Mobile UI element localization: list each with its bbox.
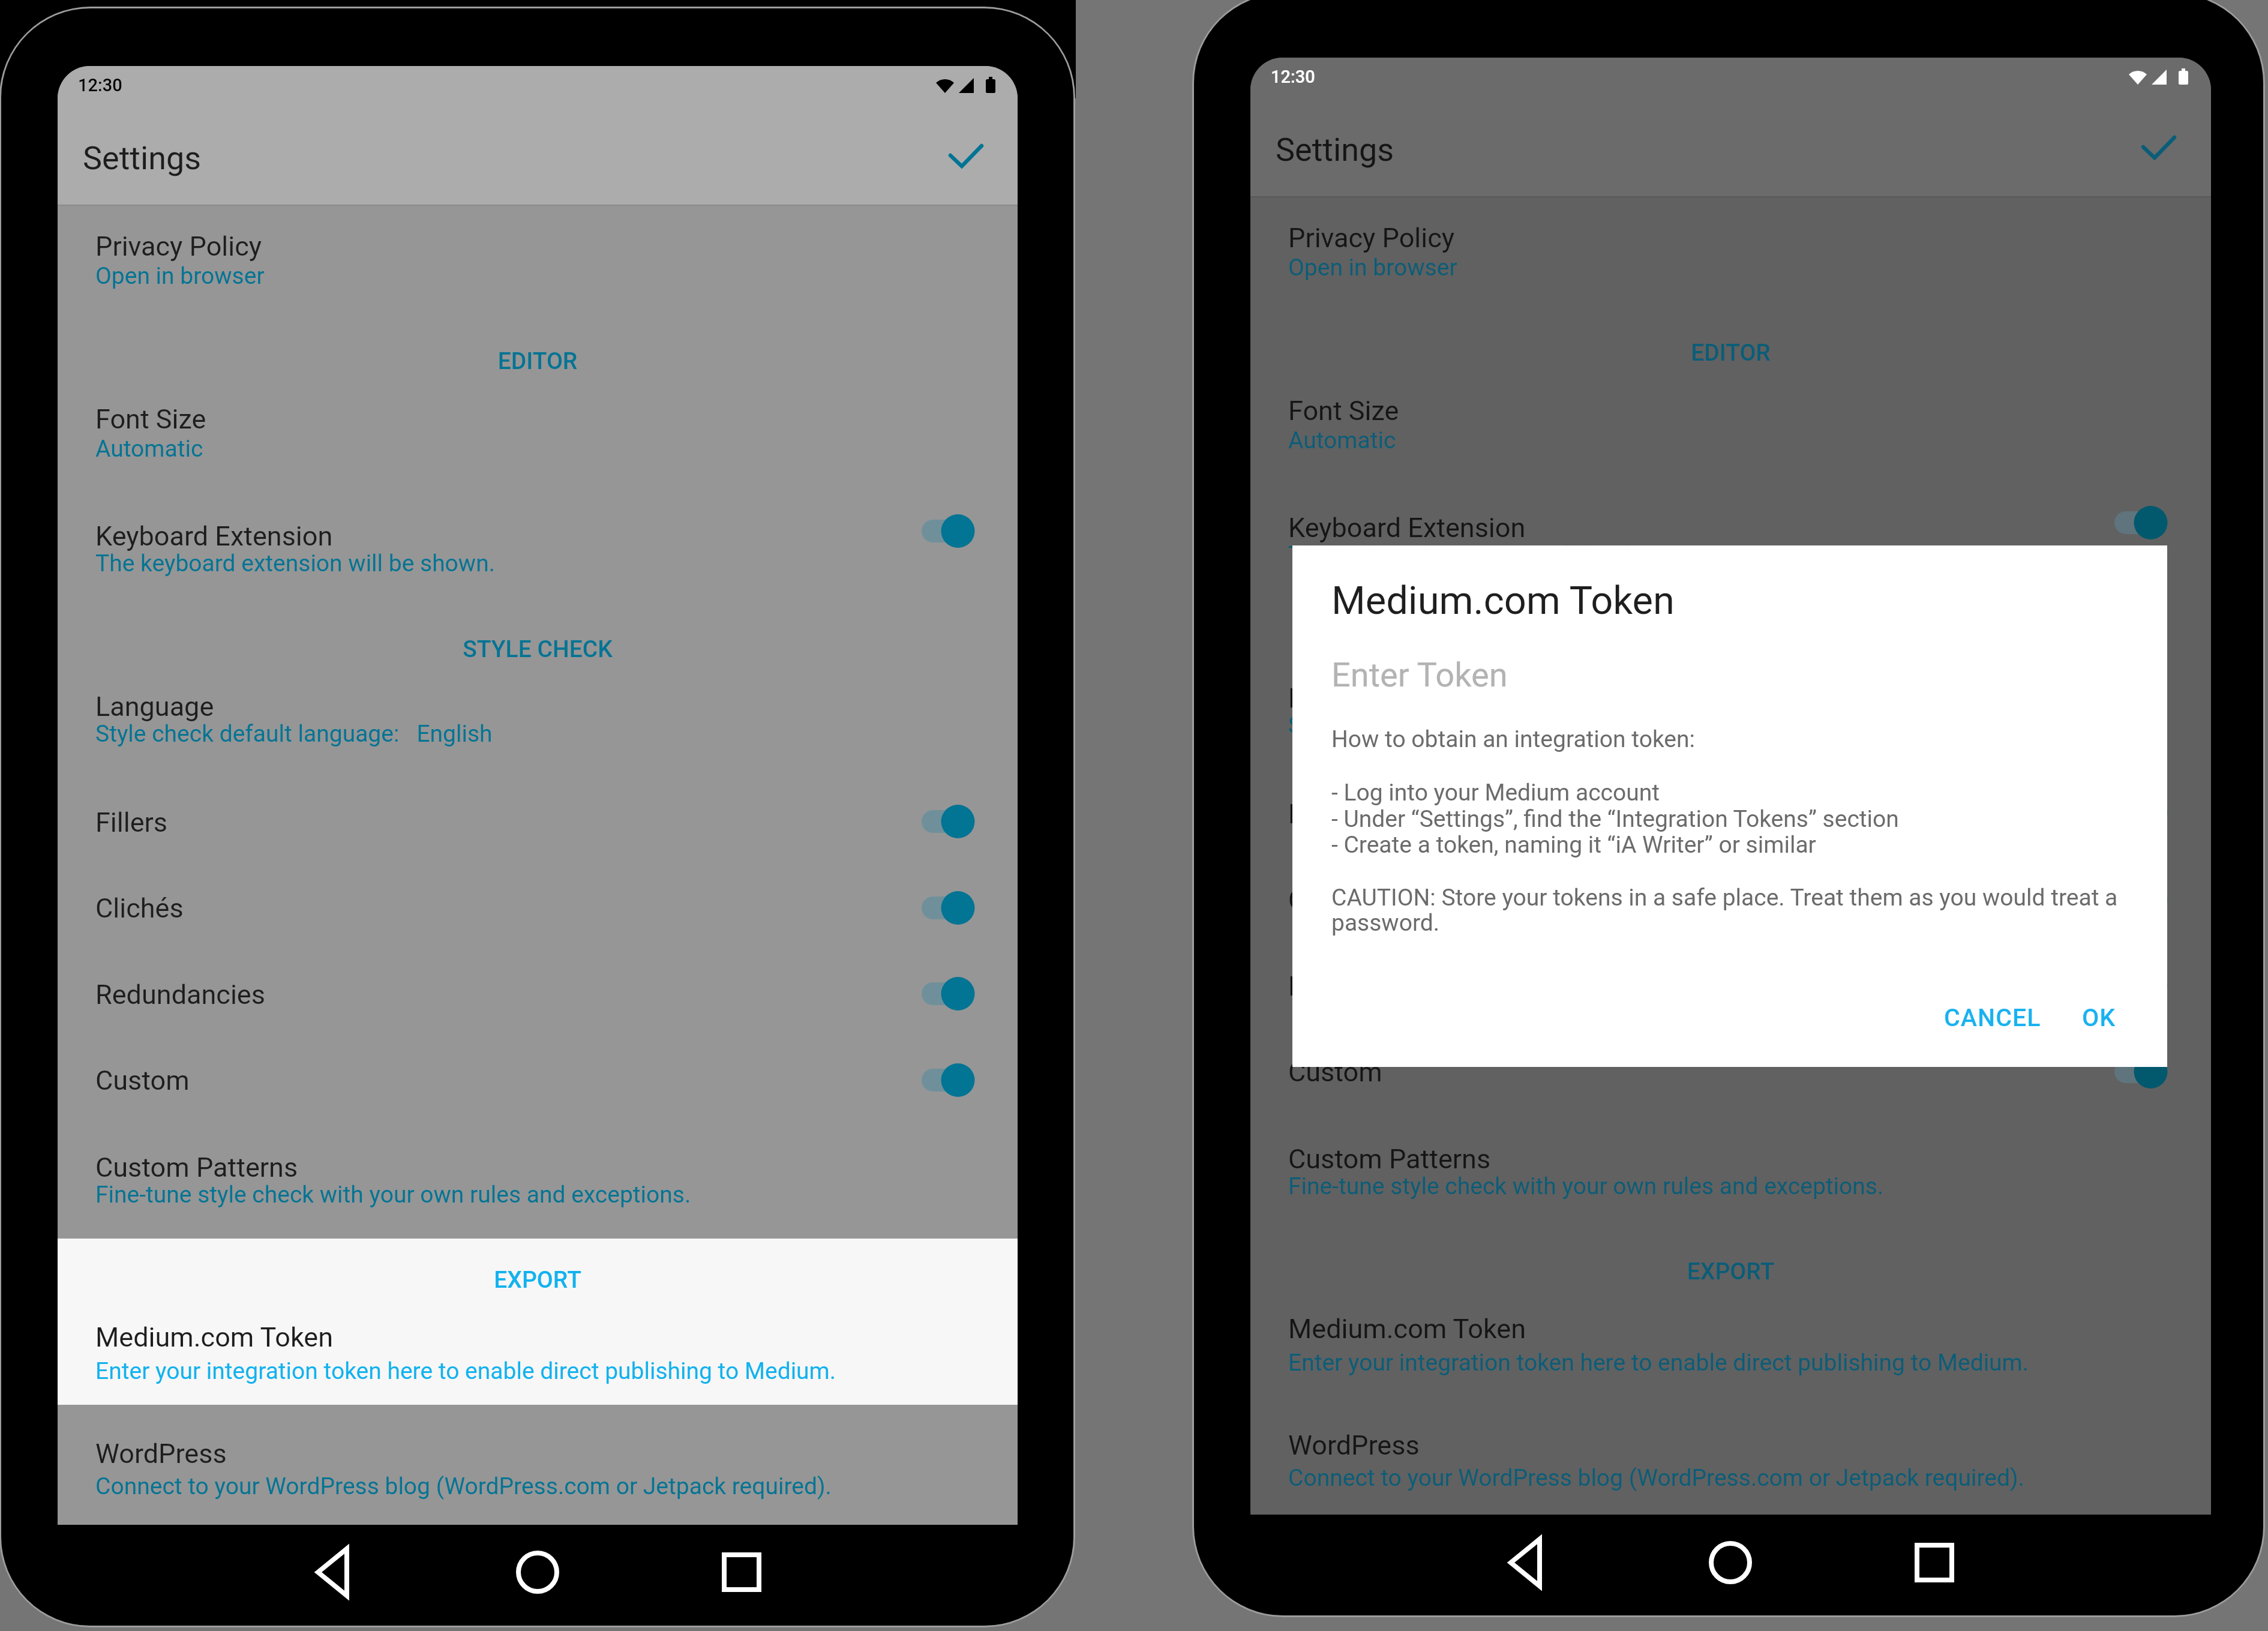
staticText: Language [1288, 682, 1407, 714]
staticText: Open in browser [95, 262, 265, 290]
staticText: Fine-tune style check with your own rule… [95, 1181, 691, 1209]
staticText: CAUTION: Store your tokens in a safe pla… [1331, 884, 2118, 912]
staticText: CANCEL [1944, 1003, 2041, 1032]
button[interactable] [58, 961, 1018, 1047]
button[interactable] [58, 393, 1018, 486]
button[interactable]: Toggle [2114, 793, 2184, 834]
staticText: Medium.com Token [1331, 578, 1675, 623]
button[interactable]: Toggle [922, 973, 991, 1014]
staticText: Font Size [95, 403, 206, 435]
button[interactable] [1250, 209, 2211, 304]
staticText: Connect to your WordPress blog (WordPres… [95, 1473, 832, 1500]
staticText: OK [2082, 1003, 2116, 1032]
staticText: Enter your integration token here to ena… [95, 1357, 836, 1385]
staticText: Custom [1288, 1056, 1382, 1088]
staticText: Font Size [1288, 395, 1399, 427]
button[interactable]: Toggle [2114, 1051, 2184, 1092]
button[interactable] [1250, 781, 2211, 867]
staticText: EDITOR [58, 347, 1018, 375]
staticText: The keyboard extension will be shown. [95, 550, 495, 577]
staticText: Clichés [1288, 884, 1376, 916]
button[interactable] [1250, 385, 2211, 478]
staticText: Custom Patterns [1288, 1143, 1491, 1175]
button[interactable] [58, 218, 1018, 312]
staticText: Enter Token [1331, 655, 1508, 695]
staticText: The keyboard extension will be shown. [1288, 541, 1688, 569]
staticText: Keyboard Extension [1288, 512, 1526, 544]
staticText: STYLE CHECK [58, 635, 1018, 663]
button[interactable]: Toggle [922, 511, 991, 551]
staticText: Automatic [95, 435, 203, 463]
staticText: Connect to your WordPress blog (WordPres… [1288, 1464, 2024, 1492]
staticText: WordPress [95, 1438, 227, 1470]
staticText: - Log into your Medium account [1331, 779, 1660, 806]
button[interactable] [1250, 1132, 2211, 1222]
button[interactable] [58, 1308, 1018, 1405]
staticText: 12:30 [78, 75, 122, 95]
button[interactable] [58, 789, 1018, 875]
button[interactable] [58, 875, 1018, 961]
staticText: - Create a token, naming it “iA Writer” … [1331, 831, 1816, 859]
other: Navigation bar [298, 1536, 778, 1608]
staticText: EDITOR [1250, 339, 2211, 367]
button[interactable] [1250, 952, 2211, 1039]
staticText: Clichés [95, 892, 184, 924]
staticText: Keyboard Extension [95, 520, 333, 552]
button[interactable] [58, 1428, 1018, 1523]
staticText: - Under “Settings”, find the “Integratio… [1331, 805, 1899, 833]
staticText: Settings [1276, 131, 1394, 169]
staticText: WordPress [1288, 1429, 1420, 1461]
staticText: EXPORT [1250, 1258, 2211, 1285]
staticText: Style check default language: English [1288, 712, 1685, 739]
button[interactable] [1250, 671, 2211, 763]
button[interactable] [1250, 502, 2211, 592]
button[interactable]: Toggle [2114, 879, 2184, 920]
button[interactable]: Cancel [1924, 985, 2021, 1014]
button[interactable] [1250, 1039, 2211, 1125]
staticText: password. [1331, 909, 1440, 937]
staticText: Fillers [95, 806, 168, 838]
staticText: Privacy Policy [95, 230, 262, 262]
staticText: Fillers [1288, 798, 1361, 830]
staticText: Medium.com Token [1288, 1313, 1526, 1345]
staticText: EXPORT [58, 1266, 1018, 1294]
staticText: Custom [95, 1065, 190, 1096]
button[interactable]: Toggle [922, 888, 991, 928]
button[interactable]: Save settings [918, 121, 997, 191]
staticText: Fine-tune style check with your own rule… [1288, 1173, 1884, 1200]
staticText: Medium.com Token [95, 1321, 333, 1353]
staticText: Automatic [1288, 427, 1396, 454]
staticText: Open in browser [1288, 254, 1457, 281]
staticText: Redundancies [1288, 970, 1458, 1002]
button[interactable]: Save settings [2111, 113, 2190, 182]
button[interactable]: OK [2062, 985, 2096, 1014]
button[interactable]: Toggle [2114, 502, 2184, 543]
staticText: STYLE CHECK [1250, 627, 2211, 655]
other: Navigation bar [1490, 1527, 1970, 1599]
button[interactable] [1250, 1420, 2211, 1515]
button[interactable] [1250, 867, 2211, 952]
staticText: Custom Patterns [95, 1152, 298, 1183]
staticText: Language [95, 691, 214, 722]
button[interactable] [58, 1047, 1018, 1133]
staticText: Enter your integration token here to ena… [1288, 1349, 2029, 1377]
button[interactable]: Toggle [2114, 965, 2184, 1006]
staticText: Style check default language: English [95, 720, 493, 748]
staticText: Settings [83, 139, 202, 177]
button[interactable] [58, 1140, 1018, 1230]
button[interactable] [58, 679, 1018, 771]
staticText: 12:30 [1271, 67, 1315, 87]
staticText: Redundancies [95, 979, 265, 1011]
button[interactable] [58, 510, 1018, 600]
staticText: Privacy Policy [1288, 222, 1455, 254]
staticText: How to obtain an integration token: [1331, 725, 1695, 753]
button[interactable]: Toggle [922, 801, 991, 842]
button[interactable] [1250, 1300, 2211, 1396]
button[interactable]: Toggle [922, 1060, 991, 1101]
